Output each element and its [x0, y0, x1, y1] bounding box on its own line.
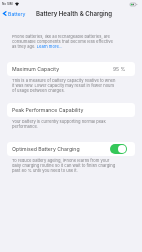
staticText: 95 % [113, 66, 126, 72]
staticText: Battery Health & Charging [36, 10, 113, 17]
staticText: This is a measure of battery capacity re… [12, 78, 117, 93]
button[interactable]: Peak Performance Capability [7, 103, 135, 117]
staticText: Peak Performance Capability [12, 107, 84, 113]
staticText: Your battery is currently supporting nor… [12, 119, 117, 129]
staticText: No SIM [2, 2, 13, 6]
staticText: Optimised Battery Charging [12, 146, 80, 152]
staticText: Battery [8, 11, 26, 17]
staticText: To reduce battery ageing, iPhone learns … [12, 158, 117, 173]
button[interactable]: Maximum Capacity [7, 62, 135, 76]
button[interactable]: Optimised Battery Charging toggle [110, 144, 127, 154]
button[interactable]: Optimised Battery Charging [7, 142, 135, 156]
staticText: Maximum Capacity [12, 66, 60, 72]
button[interactable]: Battery [2, 10, 26, 17]
staticText: Phone batteries, like all rechargeable b… [12, 34, 117, 49]
